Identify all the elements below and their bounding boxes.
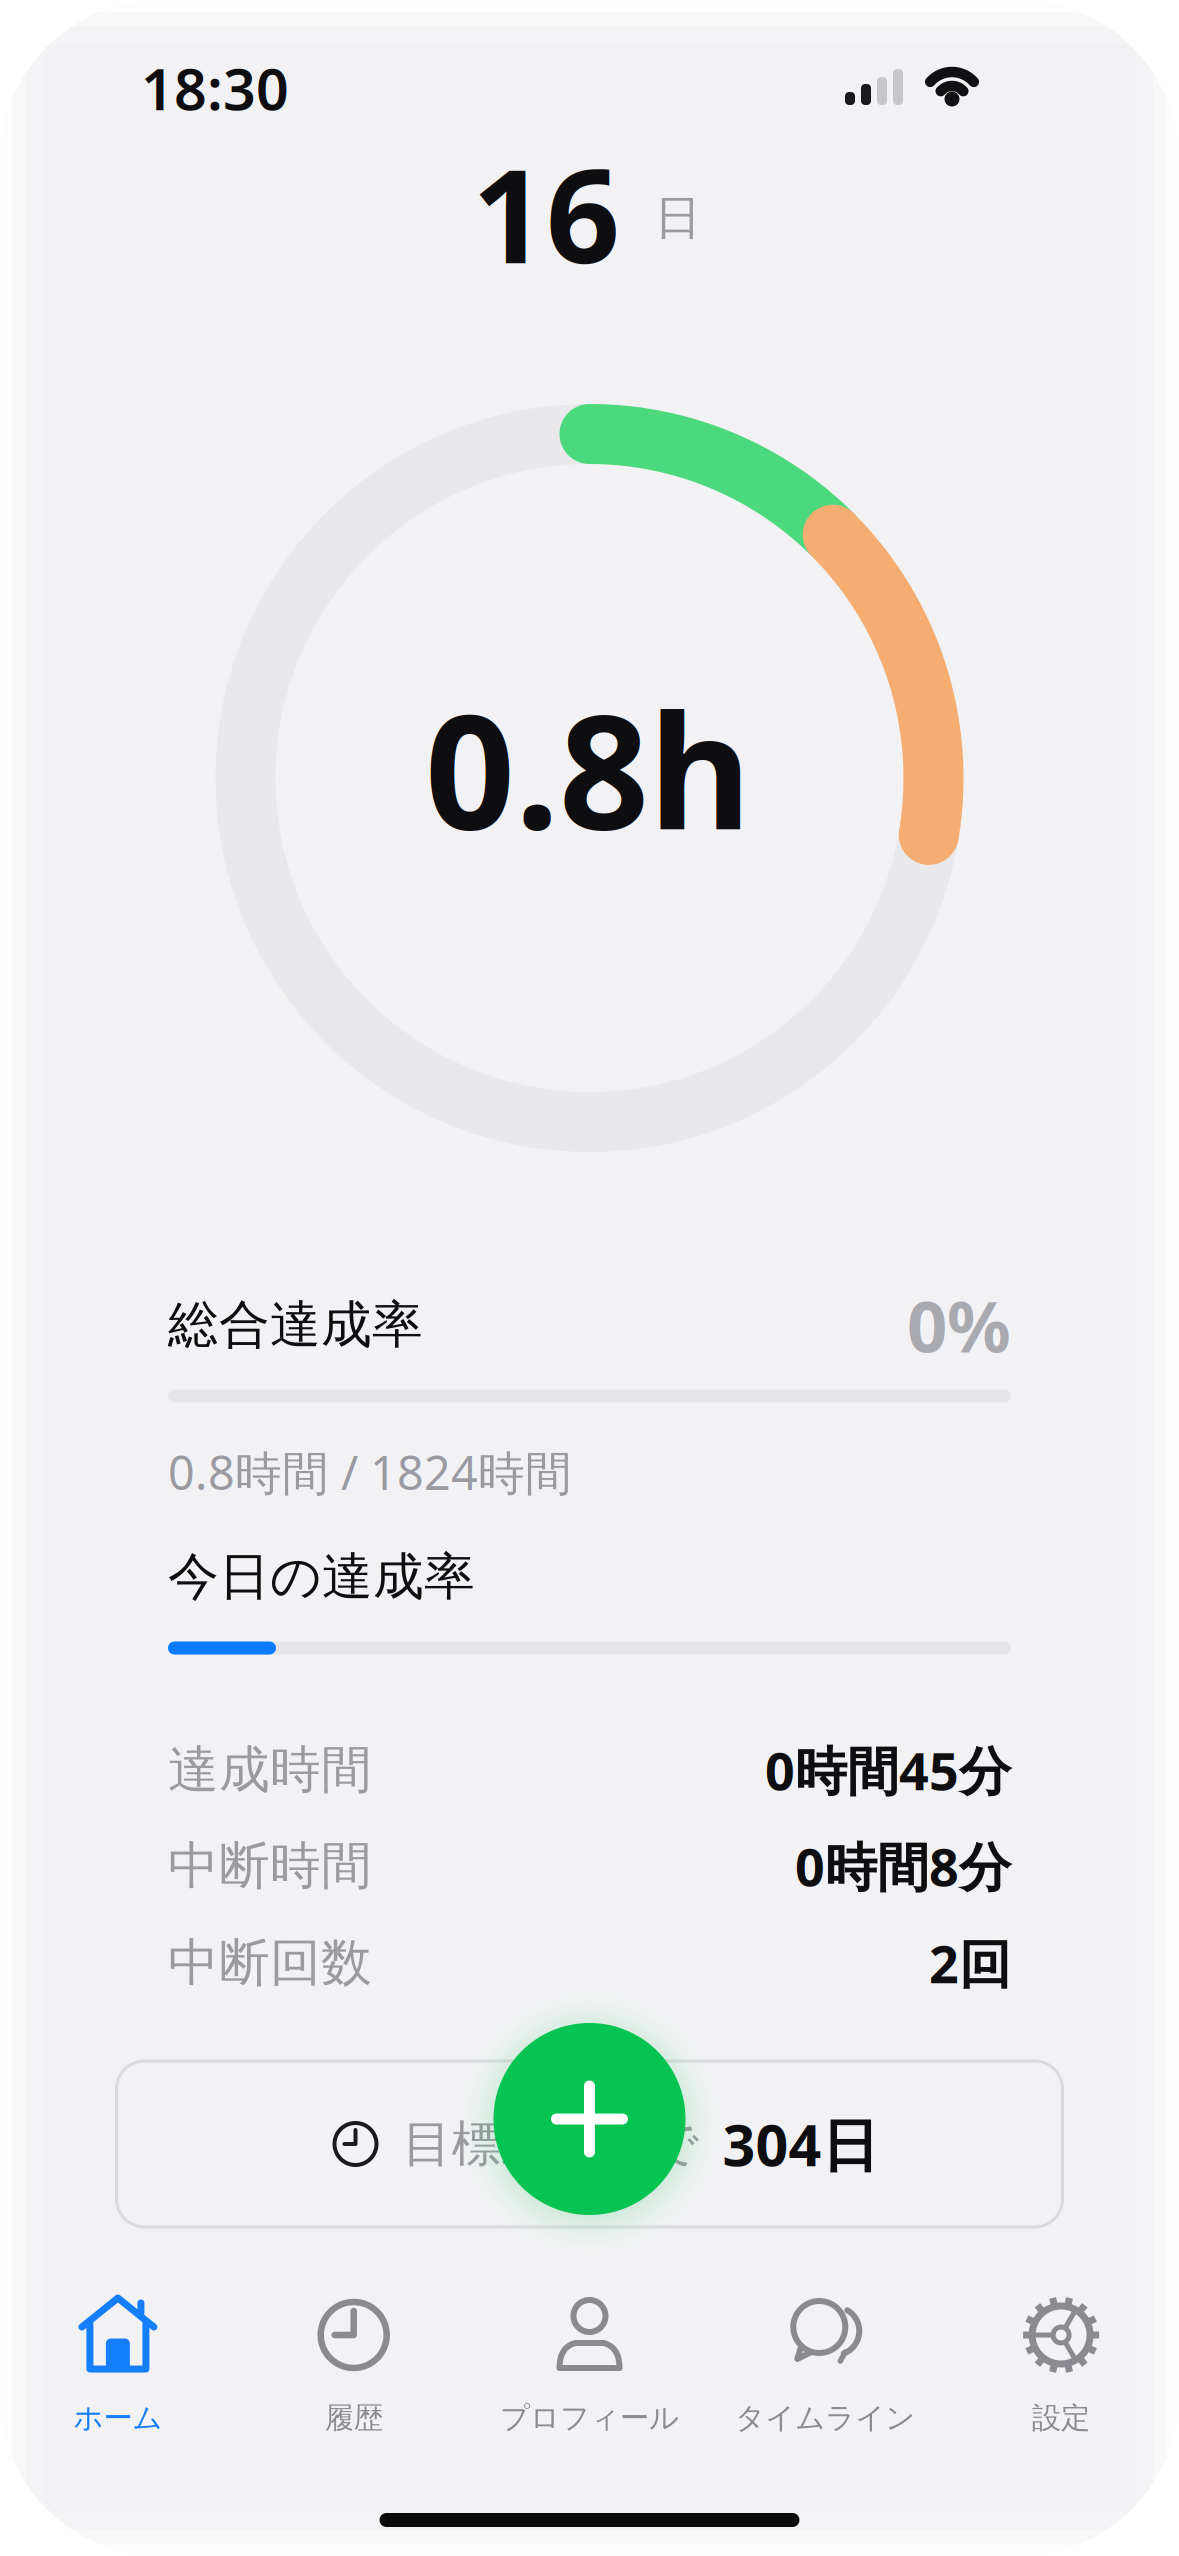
staticText: 日 xyxy=(654,189,701,247)
button[interactable]: タイムライン xyxy=(708,2287,943,2457)
staticText: 総合達成率 xyxy=(168,1294,423,1356)
staticText: 目標達成まで xyxy=(402,2114,698,2174)
staticText: 履歴 xyxy=(325,2400,383,2436)
staticText: タイムライン xyxy=(735,2400,915,2436)
staticText: 18:30 xyxy=(141,50,289,126)
staticText: 0.8h xyxy=(425,663,751,872)
staticText: 0時間8分 xyxy=(795,1831,1011,1901)
staticText: 今日の達成率 xyxy=(168,1546,475,1608)
staticText: 0% xyxy=(907,1278,1011,1372)
button[interactable]: 履歴 xyxy=(236,2287,471,2457)
staticText: 0.8時間 / 1824時間 xyxy=(168,1441,572,1503)
staticText: 16 xyxy=(472,127,620,299)
staticText: ホーム xyxy=(73,2400,162,2436)
button[interactable]: プロフィール xyxy=(472,2287,707,2457)
button[interactable]: 目標達成まで xyxy=(116,2061,1062,2227)
staticText: 304日 xyxy=(722,2106,878,2182)
button[interactable]: 記録を追加 xyxy=(493,2023,685,2215)
staticText: 2回 xyxy=(929,1928,1011,1998)
button[interactable]: 設定 xyxy=(944,2287,1179,2457)
staticText: 中断回数 xyxy=(168,1932,372,1994)
staticText: プロフィール xyxy=(500,2400,679,2436)
staticText: 中断時間 xyxy=(168,1835,372,1897)
staticText: 設定 xyxy=(1032,2400,1090,2436)
button[interactable]: ホーム xyxy=(0,2287,235,2457)
staticText: 0時間45分 xyxy=(765,1735,1011,1805)
staticText: 達成時間 xyxy=(168,1739,372,1801)
